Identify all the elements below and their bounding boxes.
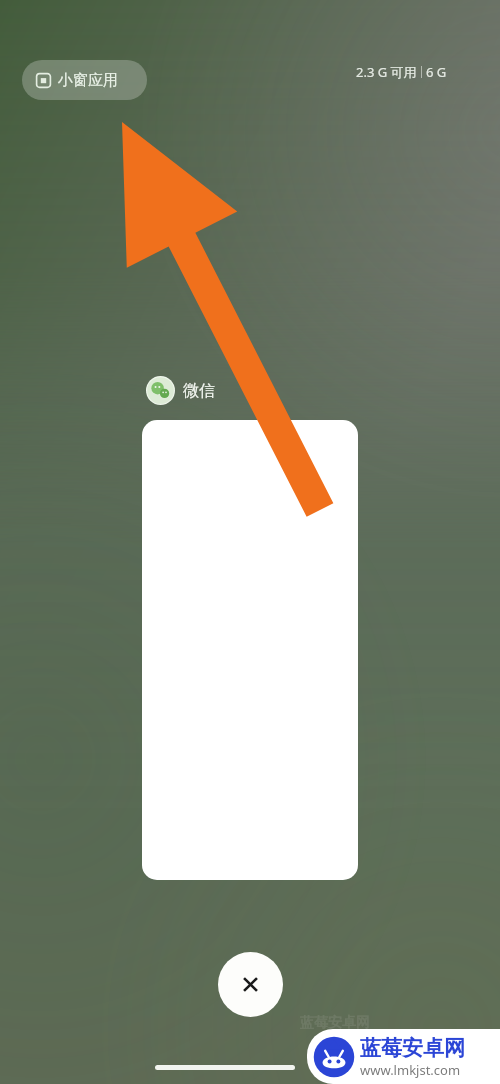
- staticText: 蓝莓安卓网: [300, 1014, 370, 1032]
- button[interactable]: 小窗应用: [22, 60, 147, 100]
- button[interactable]: 微信: [146, 376, 215, 405]
- staticText: 微信: [183, 381, 215, 401]
- staticText: 小窗应用: [58, 71, 118, 90]
- button[interactable]: Close: [218, 952, 283, 1017]
- staticText: 蓝莓安卓网: [360, 1035, 465, 1061]
- staticText: 6 G: [426, 63, 447, 81]
- button[interactable]: [142, 420, 358, 880]
- staticText: www.lmkjst.com: [360, 1061, 461, 1079]
- staticText: 2.3 G 可用: [356, 63, 417, 81]
